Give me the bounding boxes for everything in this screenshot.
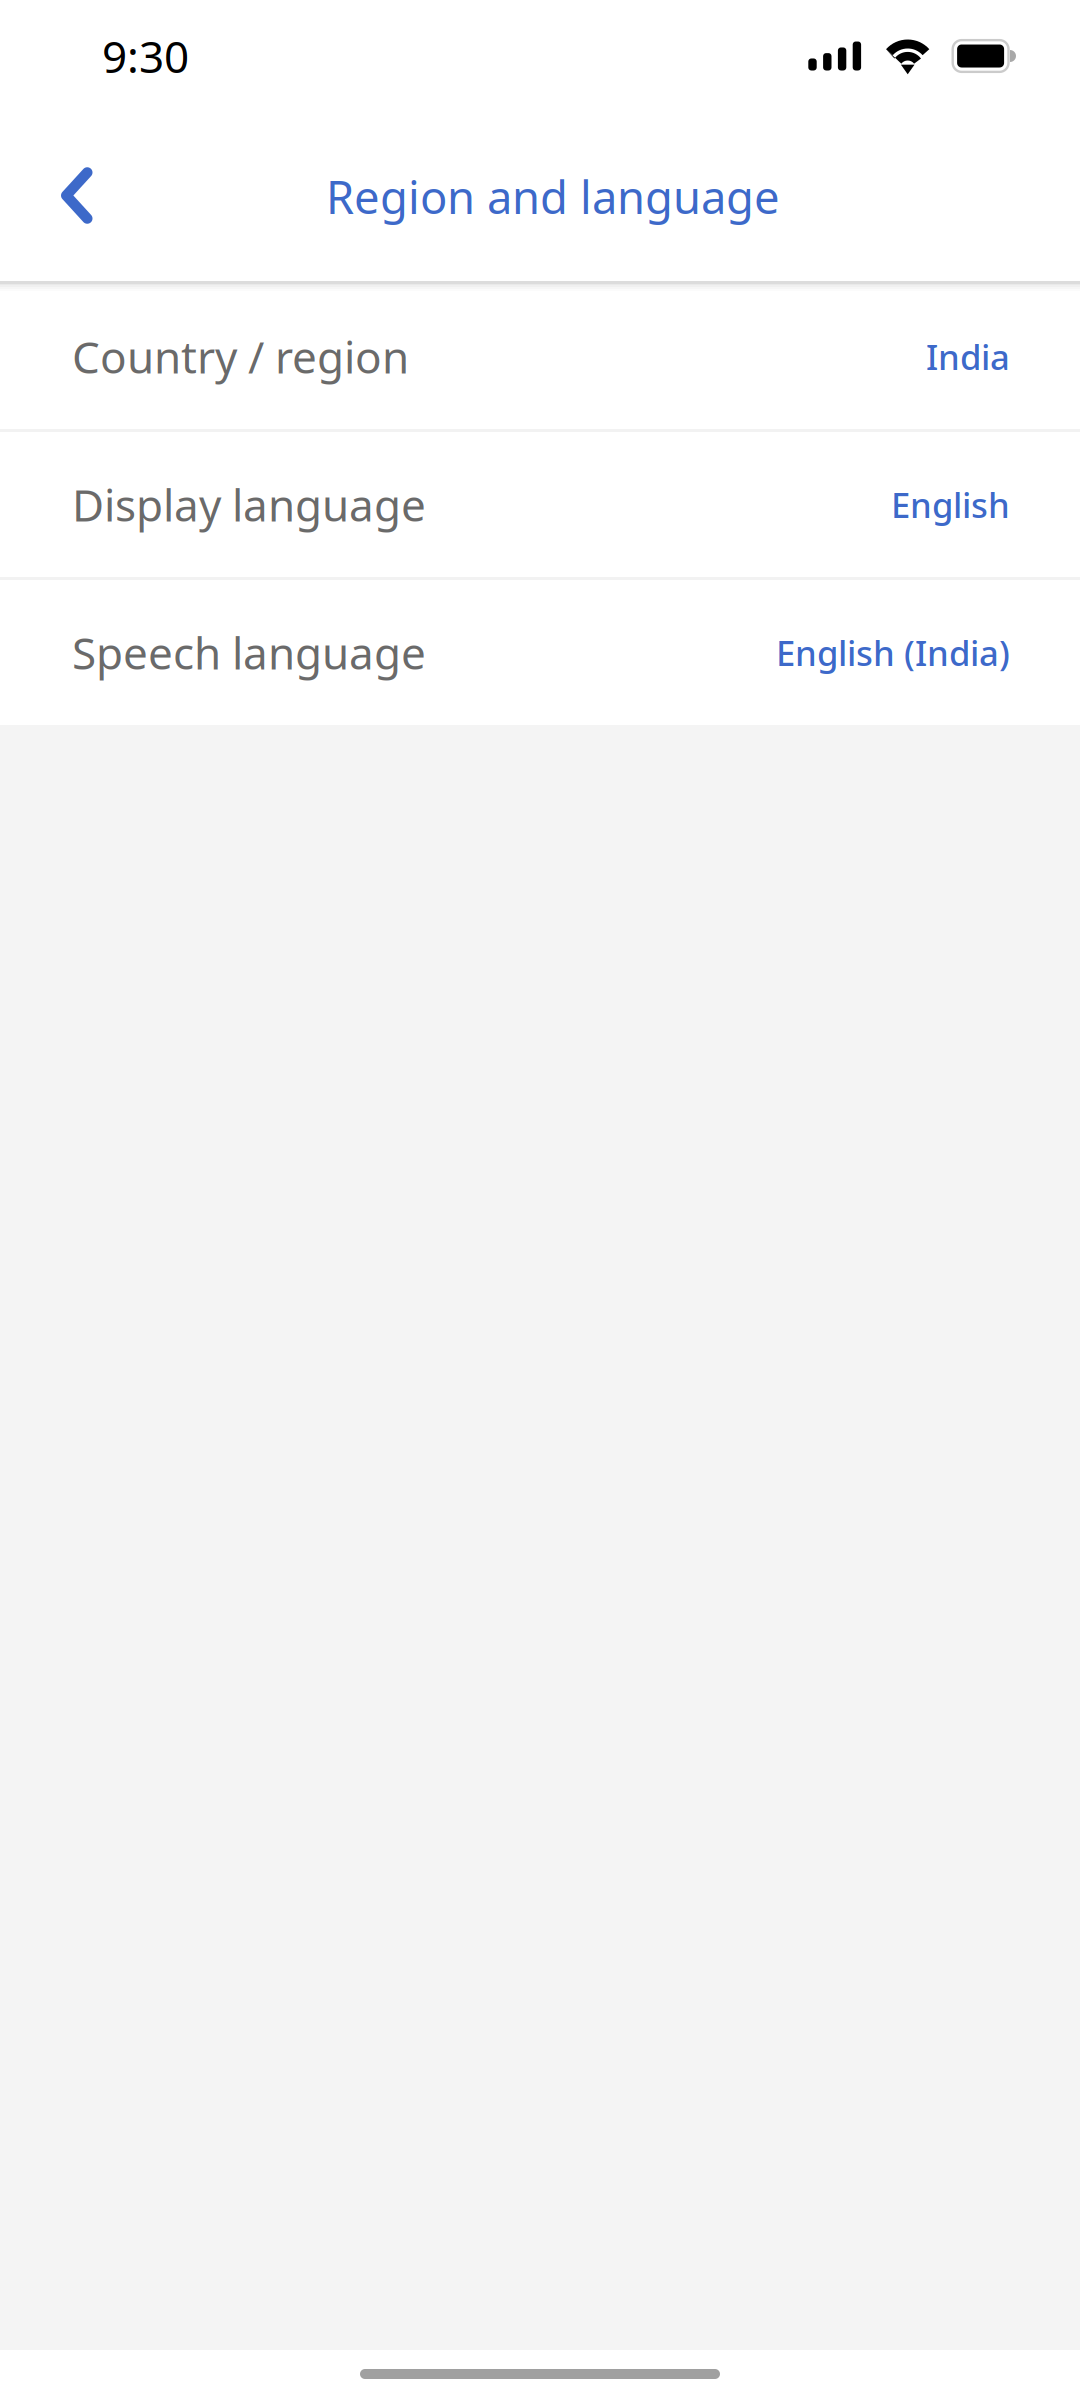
button[interactable]: Speech language [0, 580, 1080, 725]
staticText: Display language [72, 475, 426, 534]
staticText: Country / region [72, 327, 409, 386]
button[interactable]: Country / region [0, 284, 1080, 429]
staticText: 9:30 [102, 27, 189, 85]
staticText: English [891, 481, 1010, 527]
staticText: Speech language [72, 623, 426, 682]
staticText: English (India) [776, 629, 1010, 675]
staticText: Region and language [326, 166, 780, 227]
button[interactable]: Display language [0, 432, 1080, 577]
button[interactable]: Back [16, 133, 142, 259]
staticText: India [926, 333, 1010, 379]
